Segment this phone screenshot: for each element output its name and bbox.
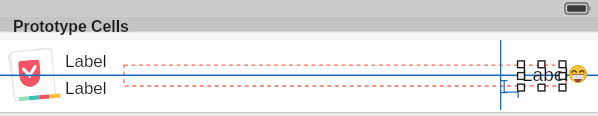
button[interactable]: App icon	[6, 44, 60, 104]
button[interactable]: Label	[522, 64, 569, 85]
button[interactable]: Laughing emoji	[569, 65, 587, 83]
button[interactable]: Label	[65, 79, 107, 98]
button[interactable]	[0, 17, 598, 31]
button[interactable]: Battery	[564, 2, 592, 15]
staticText: Prototype Cells	[13, 18, 129, 36]
button[interactable]: Label	[65, 52, 107, 71]
